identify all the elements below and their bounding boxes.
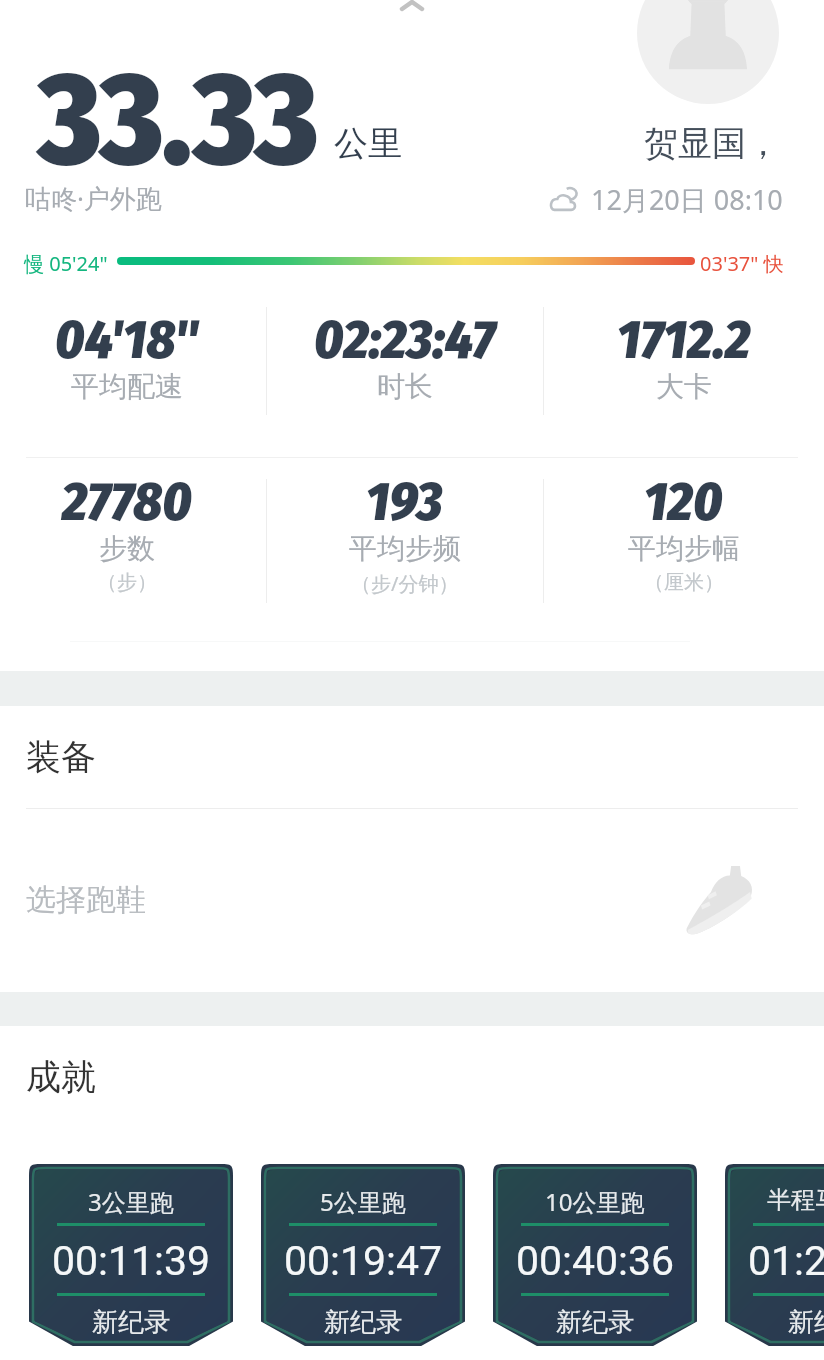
- staticText: 03'37" 快: [700, 250, 784, 277]
- staticText: 平均步频: [349, 531, 461, 566]
- staticText: 咕咚·户外跑: [25, 180, 162, 216]
- staticText: （步/分钟）: [351, 570, 459, 597]
- staticText: 04'18": [55, 308, 199, 373]
- staticText: 193: [366, 470, 443, 535]
- staticText: 1712.2: [617, 308, 751, 373]
- staticText: （厘米）: [644, 570, 724, 595]
- staticText: 新纪录: [556, 1306, 634, 1339]
- staticText: 平均配速: [71, 369, 183, 404]
- staticText: 3公里跑: [88, 1185, 174, 1218]
- staticText: 贺显国，: [644, 122, 780, 165]
- staticText: 装备: [26, 735, 96, 779]
- staticText: 12月20日 08:10: [591, 181, 783, 218]
- staticText: 27780: [62, 470, 193, 535]
- staticText: 慢 05'24": [24, 250, 108, 277]
- staticText: 选择跑鞋: [26, 881, 146, 919]
- staticText: （步）: [97, 570, 157, 595]
- button[interactable]: 选择跑鞋: [0, 835, 824, 965]
- staticText: 新纪录: [324, 1306, 402, 1339]
- staticText: 10公里跑: [545, 1185, 645, 1218]
- button[interactable]: Profile avatar: [637, 0, 779, 104]
- staticText: 公里: [334, 122, 402, 165]
- staticText: 大卡: [656, 369, 712, 404]
- staticText: 00:40:36: [516, 1237, 675, 1285]
- button[interactable]: 贺显国，: [630, 110, 800, 168]
- staticText: 新纪录: [788, 1306, 824, 1339]
- button[interactable]: 10公里跑: [493, 1164, 697, 1346]
- staticText: 02:23:47: [314, 308, 496, 373]
- staticText: 5公里跑: [320, 1185, 406, 1218]
- staticText: 成就: [26, 1055, 96, 1099]
- staticText: 新纪录: [92, 1306, 170, 1339]
- staticText: 半程马拉松: [767, 1185, 824, 1215]
- staticText: 33.33: [38, 41, 318, 197]
- staticText: 时长: [377, 369, 433, 404]
- button[interactable]: Collapse: [377, 0, 447, 30]
- button[interactable]: 5公里跑: [261, 1164, 465, 1346]
- staticText: 00:11:39: [52, 1237, 211, 1285]
- button[interactable]: 3公里跑: [29, 1164, 233, 1346]
- staticText: 01:23:45: [748, 1237, 824, 1285]
- staticText: 00:19:47: [284, 1237, 443, 1285]
- staticText: 平均步幅: [628, 531, 740, 566]
- staticText: 步数: [99, 531, 155, 566]
- button[interactable]: 半程马拉松: [725, 1164, 824, 1346]
- staticText: 120: [644, 470, 723, 535]
